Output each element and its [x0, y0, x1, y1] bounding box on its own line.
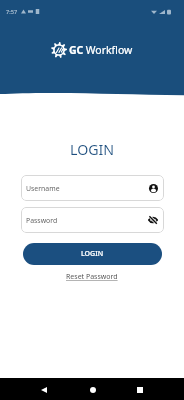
- staticText: GC: [69, 43, 84, 57]
- button[interactable]: LOGIN: [23, 243, 162, 265]
- staticText: 7:57: [6, 8, 18, 16]
- button[interactable]: Password: [21, 207, 164, 233]
- button[interactable]: Reset Password: [66, 272, 118, 282]
- other: Show password: [148, 215, 158, 225]
- button[interactable]: Home: [82, 379, 103, 400]
- button[interactable]: Username: [21, 175, 164, 201]
- button[interactable]: Back: [33, 379, 54, 400]
- button[interactable]: Recent apps: [129, 379, 150, 400]
- staticText: LOGIN: [70, 140, 115, 159]
- staticText: LOGIN: [81, 249, 104, 259]
- other: Account: [149, 184, 158, 193]
- staticText: Reset Password: [66, 272, 118, 282]
- staticText: Password: [26, 216, 58, 225]
- staticText: Workflow: [84, 43, 133, 57]
- staticText: Username: [26, 184, 60, 193]
